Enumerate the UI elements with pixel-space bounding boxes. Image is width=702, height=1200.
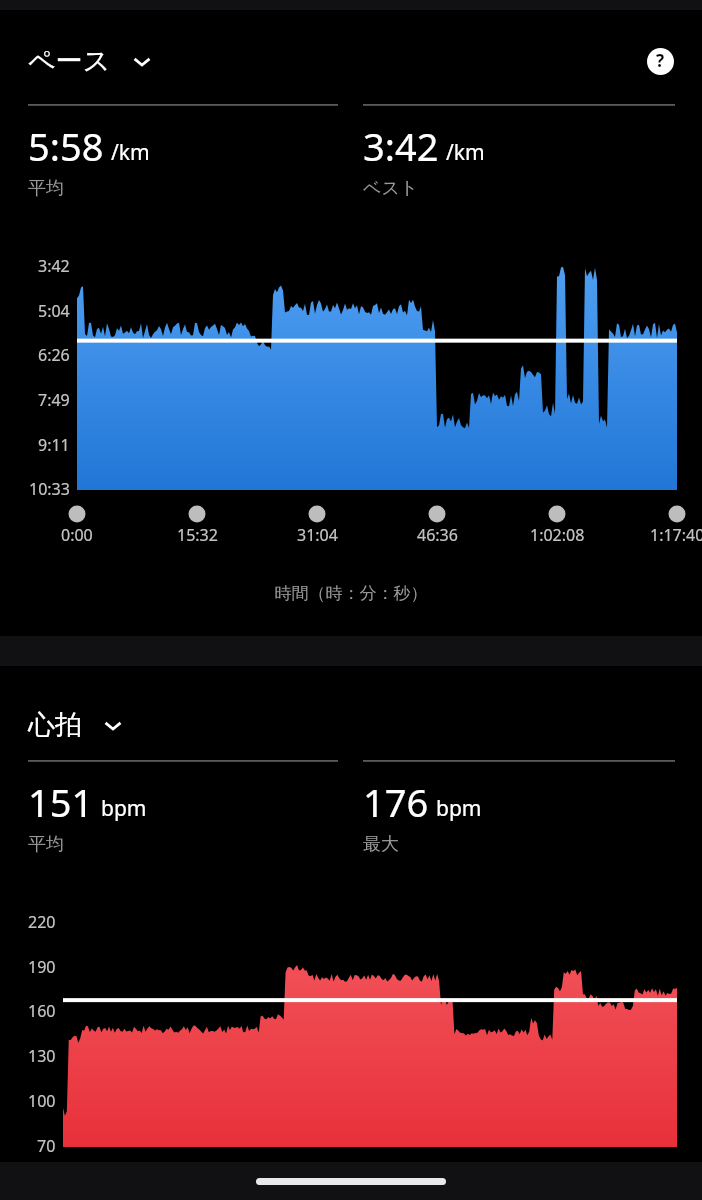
staticText: 最大 [363, 833, 399, 856]
staticText: 3:42 [38, 255, 70, 277]
staticText: 190 [28, 956, 56, 978]
staticText: bpm [436, 794, 482, 823]
staticText: ベスト [363, 177, 419, 200]
staticText: 176 [363, 776, 429, 828]
staticText: 46:36 [417, 524, 458, 546]
staticText: 130 [28, 1045, 56, 1067]
button[interactable]: ペース [20, 38, 161, 84]
staticText: ? [656, 49, 665, 72]
staticText: 10:33 [29, 478, 70, 500]
staticText: 平均 [28, 177, 64, 200]
staticText: 160 [28, 1000, 56, 1022]
staticText: 心拍 [28, 708, 82, 742]
staticText: 1:17:40 [650, 524, 702, 546]
staticText: 151 [28, 776, 94, 828]
staticText: /km [111, 138, 150, 167]
staticText: 0:00 [61, 524, 93, 546]
staticText: bpm [101, 794, 147, 823]
staticText: ペース [28, 44, 111, 78]
staticText: 1:02:08 [530, 524, 585, 546]
staticText: 7:49 [38, 389, 70, 411]
staticText: 時間（時：分：秒） [0, 583, 702, 604]
button[interactable]: 心拍 [20, 702, 132, 748]
staticText: 5:04 [38, 300, 70, 322]
staticText: 6:26 [38, 344, 70, 366]
staticText: 9:11 [38, 434, 70, 456]
staticText: 15:32 [177, 524, 218, 546]
button[interactable]: Help [641, 42, 679, 80]
staticText: 70 [37, 1135, 56, 1157]
staticText: 5:58 [28, 120, 104, 172]
staticText: 3:42 [363, 120, 439, 172]
staticText: 220 [28, 911, 56, 933]
staticText: /km [446, 138, 485, 167]
staticText: 平均 [28, 833, 64, 856]
staticText: 31:04 [297, 524, 338, 546]
staticText: 100 [28, 1090, 56, 1112]
